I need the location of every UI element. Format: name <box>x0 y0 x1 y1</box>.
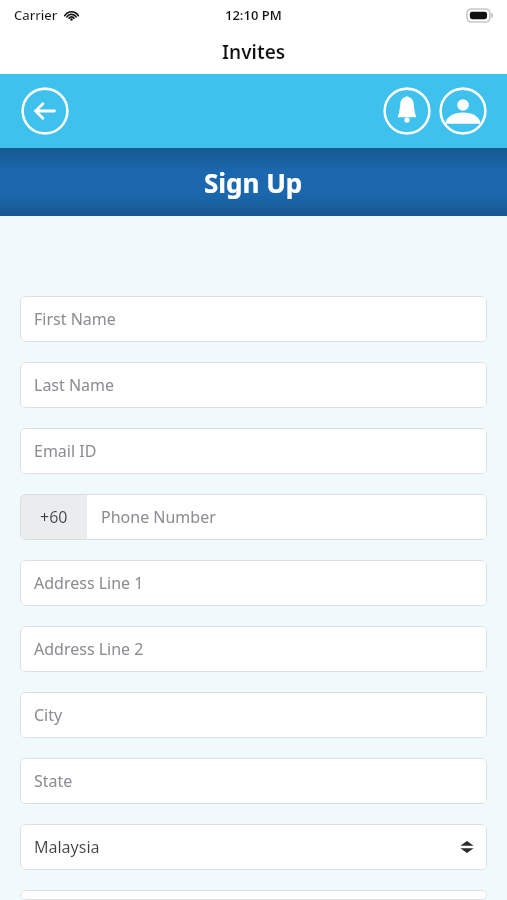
staticText: Sign Up <box>204 165 303 200</box>
button[interactable]: Notifications <box>383 87 431 135</box>
button[interactable]: Profile <box>439 87 487 135</box>
button[interactable]: Address Line 1 <box>20 560 487 606</box>
button[interactable]: City <box>20 692 487 738</box>
button[interactable]: Address Line 2 <box>20 626 487 672</box>
staticText: Phone Number <box>101 506 216 528</box>
staticText: 12:10 PM <box>225 6 282 24</box>
staticText: Invites <box>222 39 286 65</box>
staticText: Malaysia <box>34 836 100 858</box>
button[interactable]: +60 <box>20 494 487 540</box>
button[interactable]: First Name <box>20 296 487 342</box>
staticText: Last Name <box>34 374 115 396</box>
button[interactable]: Last Name <box>20 362 487 408</box>
staticText: State <box>34 770 73 792</box>
staticText: +60 <box>40 506 68 528</box>
staticText: City <box>34 704 63 726</box>
staticText: Carrier <box>14 6 58 24</box>
staticText: Address Line 1 <box>34 572 144 594</box>
staticText: Address Line 2 <box>34 638 144 660</box>
button[interactable]: Malaysia <box>20 824 487 870</box>
button[interactable]: Back <box>21 87 69 135</box>
staticText: First Name <box>34 308 116 330</box>
staticText: Email ID <box>34 440 97 462</box>
button[interactable]: State <box>20 758 487 804</box>
button[interactable]: Email ID <box>20 428 487 474</box>
button[interactable] <box>20 890 487 900</box>
